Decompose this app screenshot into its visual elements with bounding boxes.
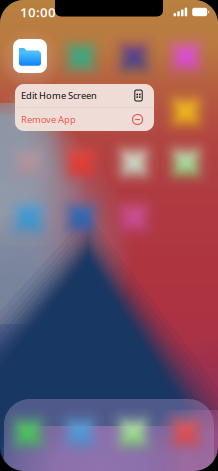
staticText: 10:00 bbox=[20, 3, 56, 21]
button[interactable]: Remove App bbox=[15, 108, 154, 131]
button[interactable]: Edit Home Screen bbox=[15, 84, 154, 107]
staticText: Edit Home Screen bbox=[21, 89, 97, 102]
staticText: Remove App bbox=[21, 113, 76, 126]
